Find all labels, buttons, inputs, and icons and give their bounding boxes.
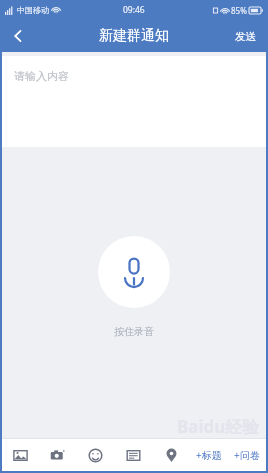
staticText: 按住录音 [114,325,154,338]
button[interactable]: 返回 [0,20,36,52]
button[interactable]: 文本 [114,439,152,471]
button[interactable]: 图片 [2,439,39,471]
button[interactable]: 按住录音 [98,236,170,308]
staticText: Baidu经验 [177,415,260,438]
staticText: 中国移动 [17,5,49,15]
staticText: 发送 [235,30,256,43]
button[interactable]: +标题 [190,439,228,471]
button[interactable]: 相机 [39,439,76,471]
button[interactable]: 请输入内容 [2,56,266,147]
button[interactable]: +问卷 [228,439,266,471]
staticText: 09:46 [123,4,145,16]
staticText: 新建群通知 [99,27,169,45]
button[interactable]: 发送 [223,20,268,52]
staticText: 85% [231,5,247,16]
button[interactable]: 位置 [152,439,190,471]
staticText: 请输入内容 [14,69,69,83]
staticText: +问卷 [234,448,260,462]
staticText: +标题 [196,448,222,462]
button[interactable]: 表情 [76,439,114,471]
